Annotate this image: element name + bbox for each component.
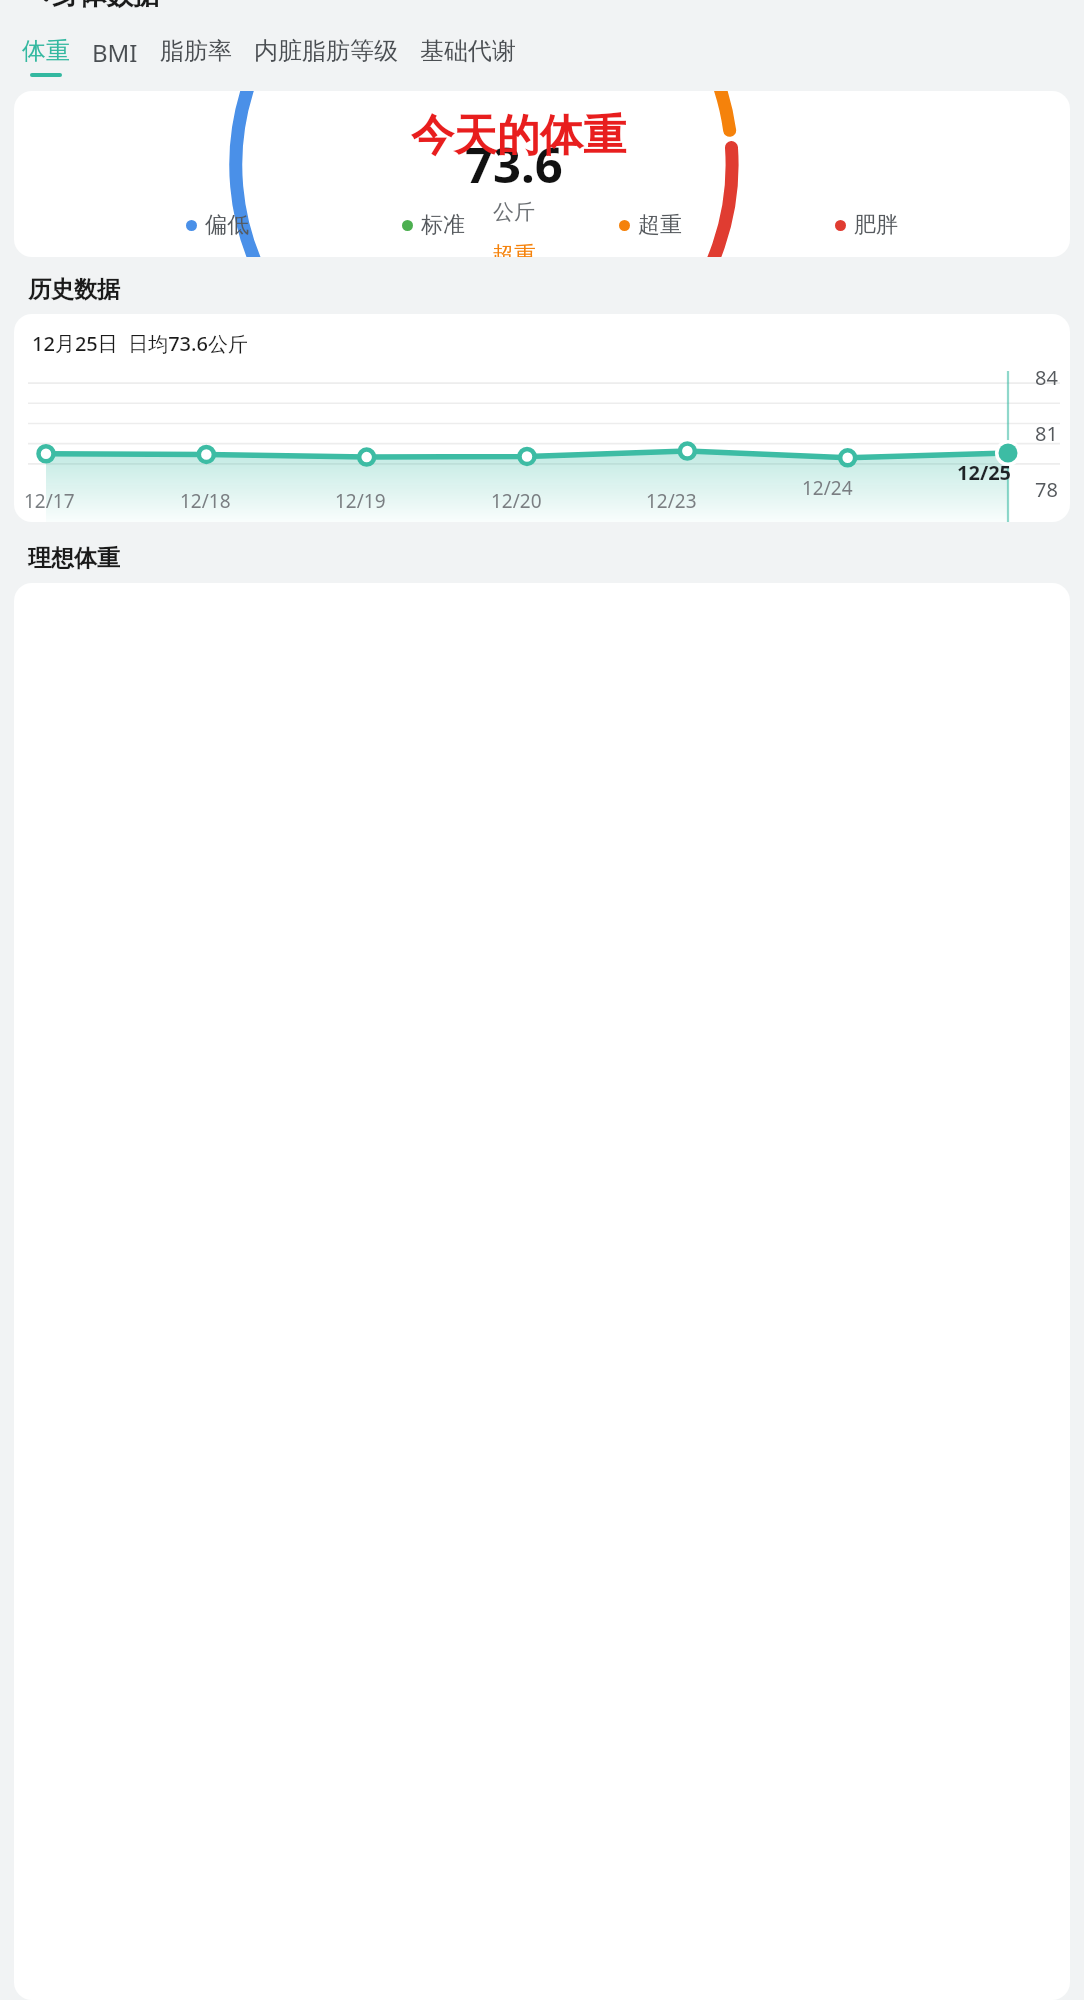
staticText: 84 [1035,364,1058,391]
staticText: 身体数据 [52,0,160,12]
staticText: 内脏脂肪等级 [254,36,398,66]
button[interactable]: 肥胖 [835,211,898,239]
staticText: 脂肪率 [160,36,232,66]
staticText: 超重 [492,241,536,257]
button[interactable]: 内脏脂肪等级 [254,34,398,75]
staticText: 78 [1035,476,1058,503]
staticText: 公斤 [493,199,535,225]
staticText: 超重 [638,211,682,239]
staticText: 标准 [421,211,465,239]
staticText: 81 [1035,420,1058,447]
staticText: 今天的体重 [411,109,626,163]
staticText: 肥胖 [854,211,898,239]
staticText: 偏低 [205,211,249,239]
button[interactable]: 73.6 [14,91,1070,257]
button[interactable]: 脂肪率 [160,34,232,75]
button[interactable]: 基础代谢 [420,34,516,75]
staticText: 体重 [22,36,70,66]
button[interactable]: 标准 [402,211,465,239]
button[interactable]: 偏低 [186,211,249,239]
button[interactable]: 超重 [619,211,682,239]
button[interactable]: BMI [92,34,138,78]
staticText: 12/25 [957,459,1012,486]
button[interactable]: 体重 [22,34,70,79]
button[interactable]: Back [14,0,70,6]
staticText: 基础代谢 [420,36,516,66]
staticText: 12/20 [491,488,542,514]
staticText: 12/17 [24,488,75,514]
staticText: 73.6 [465,131,563,198]
staticText: 理想体重 [28,544,120,573]
staticText: 12月25日 日均73.6公斤 [32,330,248,357]
staticText: 12/24 [802,475,853,501]
staticText: 12/18 [180,488,231,514]
staticText: BMI [92,36,138,69]
button[interactable]: 12月25日 日均73.6公斤 [14,314,1070,522]
staticText: 历史数据 [28,275,120,304]
staticText: 12/23 [646,488,697,514]
staticText: 12/19 [335,488,386,514]
